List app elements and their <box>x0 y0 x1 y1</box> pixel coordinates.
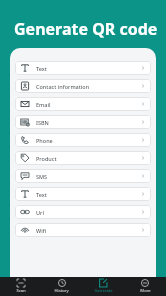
button[interactable]: Email <box>15 97 151 111</box>
staticText: Text <box>36 191 47 198</box>
staticText: Product <box>36 155 57 162</box>
staticText: More <box>140 288 151 294</box>
button[interactable]: More <box>124 279 166 294</box>
staticText: SMS <box>36 173 48 180</box>
button[interactable]: ISBN <box>15 115 151 129</box>
staticText: Url <box>36 209 44 216</box>
button[interactable]: Text <box>15 187 151 201</box>
staticText: Email <box>36 101 51 108</box>
staticText: Wifi <box>36 227 47 234</box>
staticText: Generate <box>94 288 113 294</box>
button[interactable]: Phone <box>15 133 151 147</box>
button[interactable]: Contact information <box>15 79 151 93</box>
button[interactable]: Wifi <box>15 223 151 237</box>
staticText: Phone <box>36 137 53 144</box>
button[interactable]: Scan <box>0 279 41 294</box>
button[interactable]: Url <box>15 205 151 219</box>
staticText: Contact information <box>36 83 90 90</box>
button[interactable]: Generate <box>82 279 124 294</box>
button[interactable]: Text <box>15 61 151 75</box>
staticText: Scan <box>16 288 26 294</box>
staticText: Text <box>36 65 47 72</box>
staticText: Generate QR code <box>14 18 158 40</box>
button[interactable]: SMS <box>15 169 151 183</box>
staticText: History <box>54 288 69 294</box>
staticText: ISBN <box>36 119 49 126</box>
button[interactable]: History <box>41 279 82 294</box>
button[interactable]: Product <box>15 151 151 165</box>
